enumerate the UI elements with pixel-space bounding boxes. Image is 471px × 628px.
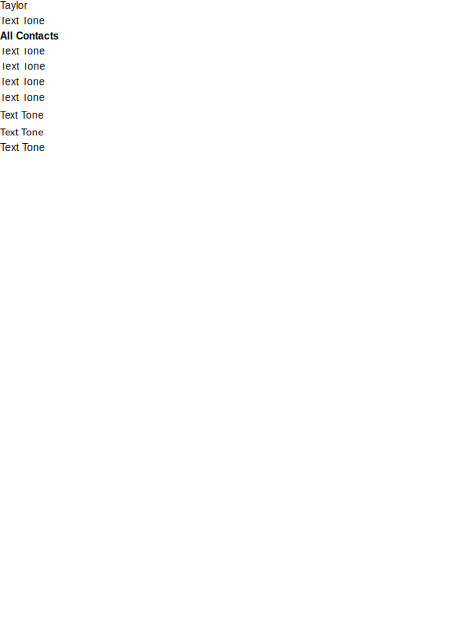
staticText: Text Tone (0, 125, 43, 137)
staticText: Text Tone (0, 141, 45, 153)
staticText: Text Tone (0, 45, 45, 57)
staticText: Text Tone (0, 76, 45, 87)
staticText: Text Tone (0, 92, 45, 103)
staticText: Taylor (0, 0, 27, 11)
staticText: All Contacts (0, 30, 59, 41)
staticText: Text Tone (0, 61, 45, 72)
staticText: Text Tone (0, 15, 45, 26)
staticText: Text Tone (0, 107, 44, 121)
